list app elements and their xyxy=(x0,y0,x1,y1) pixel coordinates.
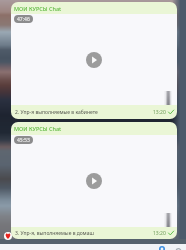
button[interactable]: Play video xyxy=(86,52,102,68)
staticText: 45:53 xyxy=(17,137,30,144)
button[interactable]: Record voice message xyxy=(154,246,170,250)
button[interactable]: Play video xyxy=(86,173,102,189)
staticText: МОИ КУРСЫ Chat xyxy=(14,5,62,12)
button[interactable]: Heart reaction xyxy=(4,232,12,240)
staticText: 13:20 xyxy=(153,230,166,237)
staticText: МОИ КУРСЫ Chat xyxy=(14,125,62,132)
staticText: 2. Упр-я выполняемые в кабинете xyxy=(15,109,153,116)
staticText: 3. Упр-я, выполняемые в домаш xyxy=(15,230,153,237)
staticText: 47:46 xyxy=(17,16,30,23)
button[interactable]: МОИ КУРСЫ Chat xyxy=(11,2,177,119)
button[interactable]: Attach file xyxy=(174,248,183,250)
button[interactable]: МОИ КУРСЫ Chat xyxy=(11,122,177,239)
staticText: 13:20 xyxy=(153,109,166,116)
